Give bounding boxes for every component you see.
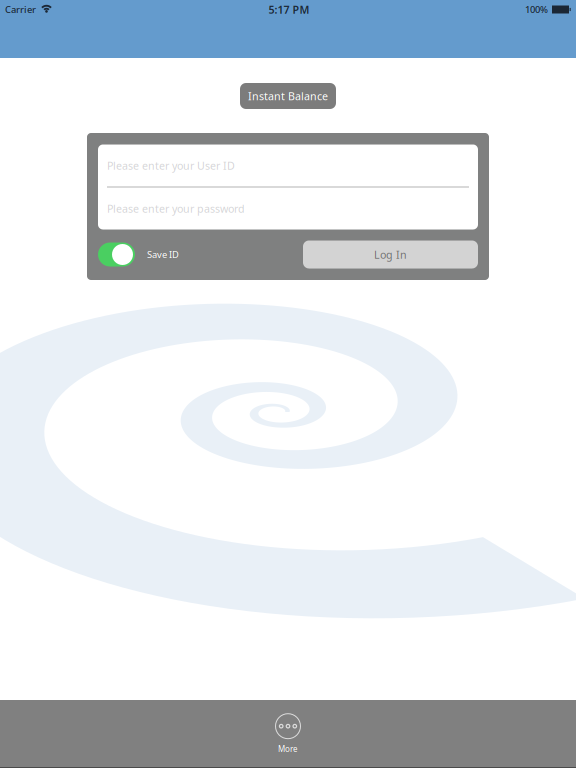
staticText: Log In [374, 247, 407, 262]
staticText: 100% [525, 3, 548, 16]
staticText: Please enter your User ID [107, 158, 235, 173]
button[interactable]: Instant Balance [240, 83, 336, 109]
staticText: Instant Balance [248, 89, 328, 103]
staticText: Please enter your password [107, 201, 245, 216]
button[interactable]: Log In [303, 240, 478, 268]
staticText: Save ID [147, 248, 179, 261]
staticText: Carrier [5, 3, 36, 16]
button[interactable]: Save ID [98, 242, 135, 266]
button[interactable]: More [228, 700, 348, 766]
staticText: More [278, 744, 298, 754]
staticText: 5:17 PM [268, 2, 309, 17]
